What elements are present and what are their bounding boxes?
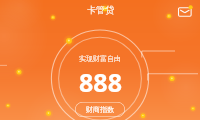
button[interactable]: 财商指数 (75, 102, 125, 117)
staticText: 实现财富自由 (79, 54, 121, 63)
staticText: 888 (79, 65, 122, 99)
staticText: 财商指数 (86, 105, 114, 114)
button[interactable]: Messages (176, 3, 194, 21)
staticText: 卡管贷 (87, 4, 114, 15)
